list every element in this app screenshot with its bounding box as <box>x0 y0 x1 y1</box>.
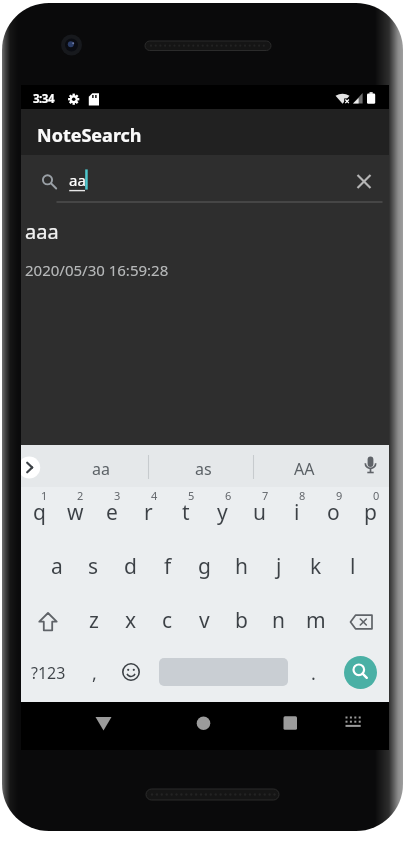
staticText: j <box>276 552 282 581</box>
button[interactable]: p <box>352 487 389 541</box>
staticText: u <box>253 498 266 527</box>
staticText: as <box>195 458 212 480</box>
staticText: aaa <box>25 218 59 245</box>
staticText: 5 <box>188 488 195 503</box>
button[interactable]: f <box>149 541 186 595</box>
staticText: l <box>350 552 356 581</box>
staticText: a <box>51 552 63 581</box>
button[interactable]: y <box>204 487 241 541</box>
staticText: e <box>106 498 118 527</box>
staticText: r <box>144 498 153 527</box>
button[interactable]: ?123 <box>28 658 69 688</box>
staticText: 0 <box>373 488 380 503</box>
button[interactable]: h <box>223 541 260 595</box>
staticText: NoteSearch <box>37 123 142 148</box>
button[interactable]: as <box>171 448 235 490</box>
staticText: 4 <box>151 488 158 503</box>
button[interactable]: s <box>75 541 112 595</box>
button[interactable]: u <box>241 487 278 541</box>
staticText: f <box>164 552 172 581</box>
button[interactable] <box>334 595 389 649</box>
button[interactable]: b <box>223 595 260 649</box>
button[interactable]: q <box>21 487 57 541</box>
button[interactable] <box>270 702 310 750</box>
staticText: c <box>162 606 173 635</box>
staticText: n <box>272 606 285 635</box>
button[interactable]: d <box>112 541 149 595</box>
staticText: ?123 <box>31 662 66 684</box>
button[interactable]: NoteSearch <box>21 109 389 155</box>
button[interactable]: m <box>297 595 334 649</box>
staticText: 6 <box>225 488 232 503</box>
button[interactable]: j <box>260 541 297 595</box>
button[interactable] <box>116 657 146 689</box>
button[interactable] <box>21 595 75 649</box>
button[interactable]: c <box>149 595 186 649</box>
button[interactable]: AA <box>272 448 336 490</box>
staticText: t <box>182 498 190 527</box>
staticText: . <box>311 661 316 686</box>
button[interactable]: r <box>130 487 167 541</box>
button[interactable]: i <box>278 487 315 541</box>
button[interactable]: , <box>77 658 111 688</box>
staticText: 3:34 <box>33 91 54 107</box>
staticText: 2 <box>77 488 84 503</box>
staticText: q <box>33 498 46 527</box>
button[interactable]: . <box>299 658 327 688</box>
button[interactable]: a <box>38 541 75 595</box>
staticText: d <box>124 552 137 581</box>
button[interactable]: z <box>75 595 112 649</box>
staticText: s <box>88 552 99 581</box>
button[interactable] <box>83 702 123 750</box>
staticText: m <box>306 606 326 635</box>
button[interactable]: g <box>186 541 223 595</box>
staticText: AA <box>294 458 315 480</box>
button[interactable] <box>337 702 369 750</box>
staticText: aa <box>69 170 86 190</box>
staticText: y <box>217 498 228 527</box>
staticText: b <box>235 606 248 635</box>
button[interactable]: x <box>112 595 149 649</box>
button[interactable]: w <box>57 487 93 541</box>
staticText: 7 <box>262 488 269 503</box>
staticText: k <box>310 552 322 581</box>
button[interactable] <box>355 445 386 487</box>
staticText: g <box>198 552 211 581</box>
button[interactable]: n <box>260 595 297 649</box>
button[interactable]: v <box>186 595 223 649</box>
staticText: aa <box>92 458 110 480</box>
staticText: 9 <box>336 488 343 503</box>
staticText: 1 <box>41 488 48 503</box>
staticText: 8 <box>299 488 306 503</box>
staticText: o <box>327 498 340 527</box>
button[interactable] <box>21 217 389 289</box>
staticText: 2020/05/30 16:59:28 <box>25 260 169 280</box>
button[interactable]: o <box>315 487 352 541</box>
staticText: p <box>364 498 377 527</box>
staticText: h <box>235 552 248 581</box>
staticText: 3 <box>114 488 121 503</box>
button[interactable] <box>21 163 389 203</box>
button[interactable]: e <box>93 487 130 541</box>
staticText: , <box>92 661 97 686</box>
staticText: x <box>125 606 137 635</box>
button[interactable]: l <box>334 541 371 595</box>
staticText: z <box>89 606 99 635</box>
button[interactable]: k <box>297 541 334 595</box>
button[interactable]: aa <box>69 448 133 490</box>
button[interactable]: t <box>167 487 204 541</box>
button[interactable] <box>183 702 223 750</box>
staticText: v <box>199 606 210 635</box>
staticText: i <box>294 498 300 527</box>
button[interactable] <box>344 656 377 689</box>
staticText: w <box>67 498 84 527</box>
